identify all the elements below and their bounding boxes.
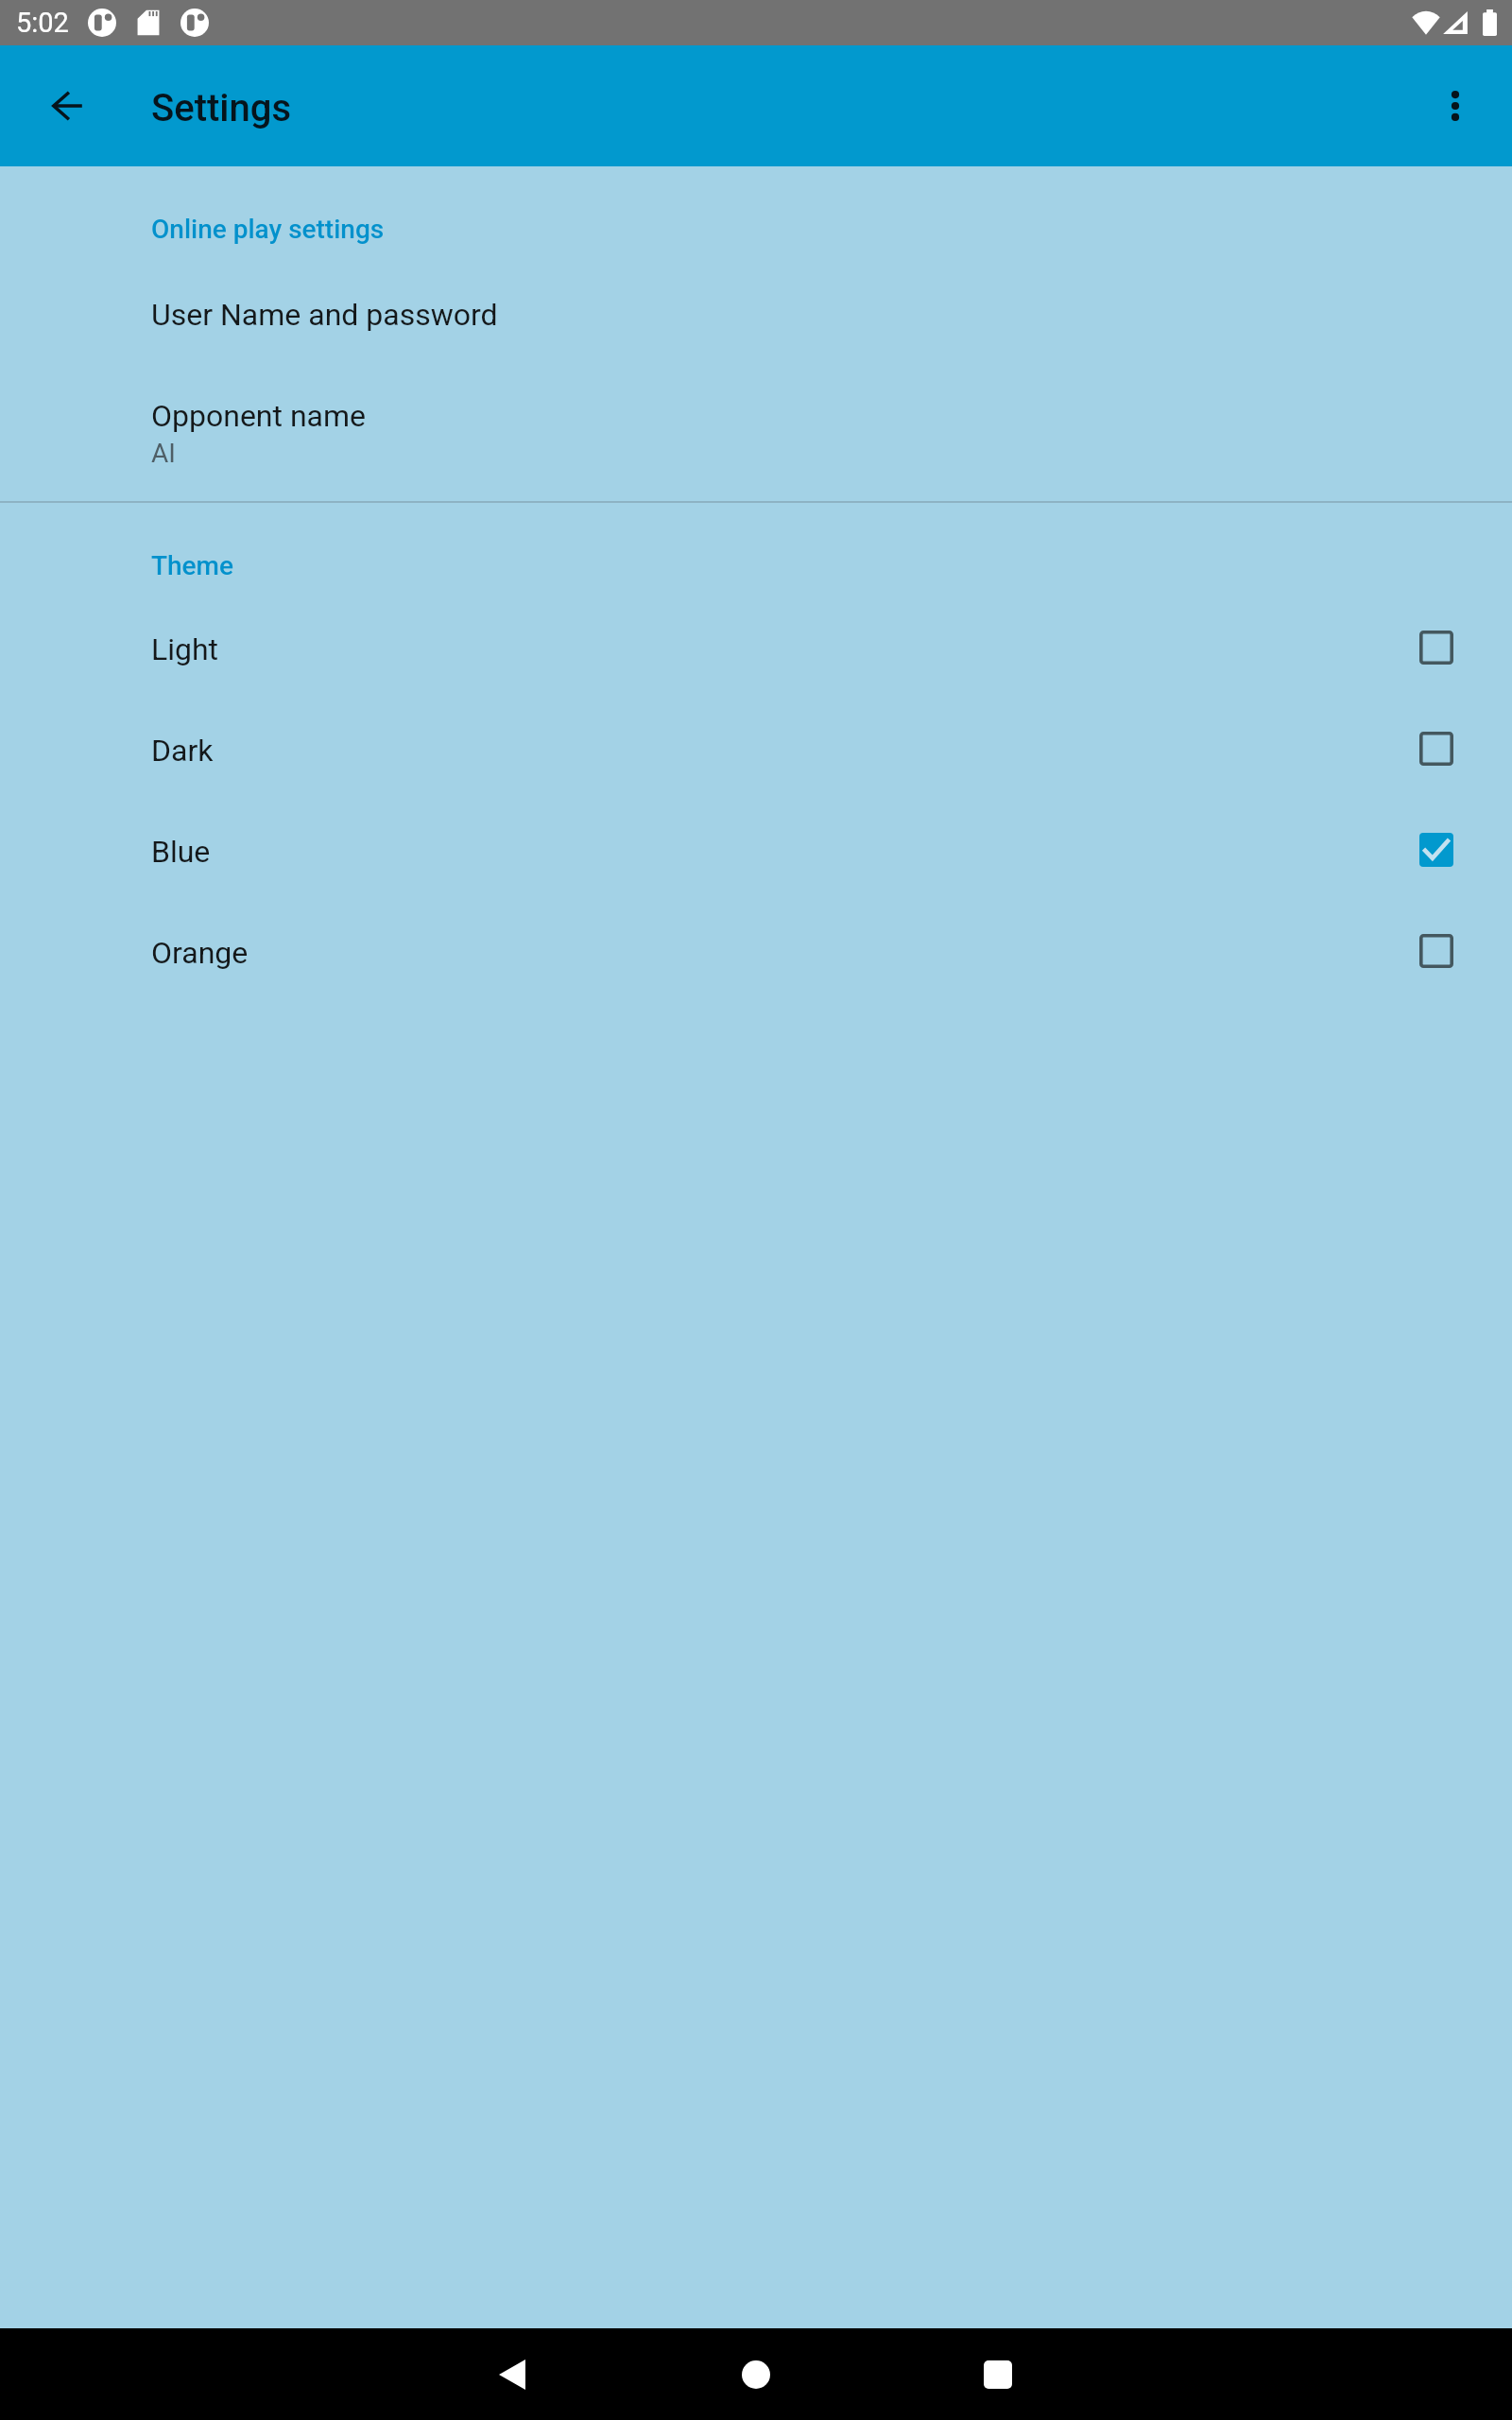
staticText: Settings: [151, 86, 292, 130]
button[interactable]: Recents: [937, 2328, 1058, 2420]
button[interactable]: Orange: [0, 902, 1512, 1003]
staticText: AI: [151, 438, 176, 469]
staticText: Theme: [151, 550, 234, 581]
button[interactable]: Opponent name: [0, 369, 1512, 478]
staticText: Blue: [151, 834, 211, 870]
button[interactable]: Dark: [0, 700, 1512, 801]
button[interactable]: Blue: [0, 801, 1512, 902]
button[interactable]: Navigate up: [22, 60, 112, 151]
staticText: Online play settings: [151, 214, 385, 245]
staticText: Dark: [151, 733, 214, 769]
staticText: Opponent name: [151, 398, 367, 434]
staticText: User Name and password: [151, 297, 498, 333]
button[interactable]: User Name and password: [0, 267, 1512, 357]
staticText: 5:02: [16, 7, 69, 39]
button[interactable]: Back: [452, 2328, 573, 2420]
staticText: Light: [151, 631, 219, 667]
button[interactable]: More options: [1410, 60, 1501, 151]
button[interactable]: Home: [696, 2328, 816, 2420]
staticText: Orange: [151, 935, 249, 971]
button[interactable]: Light: [0, 598, 1512, 700]
